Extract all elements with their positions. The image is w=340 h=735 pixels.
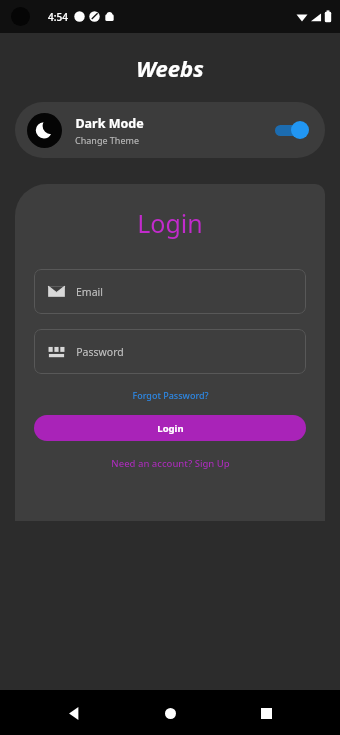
button[interactable]: Home: [148, 691, 192, 735]
staticText: Password: [76, 345, 124, 359]
button[interactable]: Recent apps: [244, 691, 288, 735]
staticText: Email: [76, 285, 103, 299]
button[interactable]: Email: [34, 269, 306, 314]
staticText: Change Theme: [75, 134, 139, 146]
staticText: Need an account? Sign Up: [111, 457, 230, 470]
button[interactable]: Login: [34, 415, 306, 441]
staticText: Login: [137, 206, 203, 240]
button[interactable]: Dark Mode: [15, 102, 325, 158]
staticText: 4:54: [48, 10, 68, 24]
button[interactable]: Forgot Password?: [128, 387, 213, 403]
button[interactable]: Back: [52, 691, 96, 735]
staticText: Dark Mode: [75, 115, 144, 132]
staticText: Login: [157, 422, 184, 435]
button[interactable]: Toggle dark mode: [273, 119, 309, 141]
button[interactable]: Need an account? Sign Up: [107, 455, 234, 472]
staticText: Forgot Password?: [132, 389, 209, 401]
button[interactable]: Password: [34, 329, 306, 374]
staticText: Weebs: [136, 53, 204, 83]
